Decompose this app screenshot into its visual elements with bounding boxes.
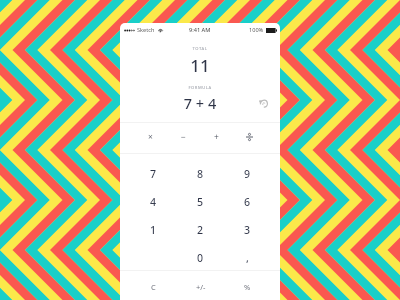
button[interactable]: +/- bbox=[177, 273, 224, 300]
staticText: 0 bbox=[197, 251, 204, 265]
button[interactable]: × bbox=[134, 122, 167, 152]
staticText: +/- bbox=[196, 282, 206, 292]
staticText: 2 bbox=[197, 223, 204, 237]
staticText: % bbox=[244, 282, 251, 292]
button[interactable]: 3 bbox=[224, 216, 271, 244]
button[interactable]: 0 bbox=[177, 244, 224, 272]
staticText: 6 bbox=[244, 195, 251, 209]
staticText: 4 bbox=[150, 195, 157, 209]
button[interactable]: Undo bbox=[258, 98, 269, 109]
staticText: 3 bbox=[244, 223, 251, 237]
button[interactable]: 9 bbox=[224, 160, 271, 188]
button[interactable]: 4 bbox=[129, 188, 177, 216]
button[interactable]: 1 bbox=[129, 216, 177, 244]
staticText: 7 bbox=[150, 167, 157, 181]
staticText: 7 + 4 bbox=[120, 93, 280, 113]
staticText: 100% bbox=[249, 26, 264, 34]
button[interactable]: 8 bbox=[177, 160, 224, 188]
staticText: 9 bbox=[244, 167, 251, 181]
staticText: 8 bbox=[197, 167, 204, 181]
staticText: Sketch bbox=[137, 26, 155, 34]
button[interactable]: C bbox=[129, 273, 177, 300]
staticText: 1 bbox=[150, 223, 157, 237]
button[interactable]: + bbox=[200, 122, 233, 152]
staticText: FORMULA bbox=[120, 85, 280, 91]
button[interactable]: 2 bbox=[177, 216, 224, 244]
staticText: 9:41 AM bbox=[189, 26, 211, 34]
button[interactable]: − bbox=[167, 122, 200, 152]
button[interactable]: 6 bbox=[224, 188, 271, 216]
button[interactable]: 7 bbox=[129, 160, 177, 188]
staticText: − bbox=[181, 131, 186, 143]
staticText: 11 bbox=[120, 54, 280, 77]
button[interactable]: , bbox=[224, 244, 271, 272]
staticText: + bbox=[214, 131, 219, 143]
button[interactable] bbox=[233, 122, 266, 152]
staticText: × bbox=[148, 131, 153, 143]
button[interactable]: % bbox=[224, 273, 271, 300]
button[interactable]: 5 bbox=[177, 188, 224, 216]
staticText: , bbox=[246, 251, 249, 265]
staticText: TOTAL bbox=[120, 46, 280, 52]
staticText: C bbox=[151, 282, 156, 292]
staticText: 5 bbox=[197, 195, 204, 209]
